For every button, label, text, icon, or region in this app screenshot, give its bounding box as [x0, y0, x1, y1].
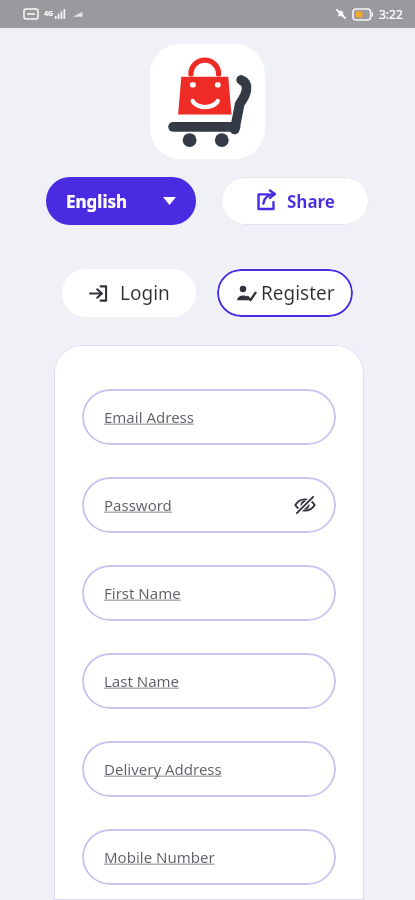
staticText: English: [66, 190, 128, 213]
button[interactable]: First Name: [82, 565, 336, 621]
button[interactable]: Register: [217, 269, 353, 317]
staticText: Share: [287, 190, 336, 213]
button[interactable]: English: [46, 177, 196, 225]
button[interactable]: Last Name: [82, 653, 336, 709]
button[interactable]: Mobile Number: [82, 829, 336, 885]
staticText: Password: [104, 495, 172, 515]
staticText: 4G: [44, 9, 54, 19]
staticText: Last Name: [104, 671, 180, 691]
staticText: Register: [261, 280, 335, 306]
staticText: 3:22: [379, 6, 403, 22]
button[interactable]: Show password: [292, 492, 318, 518]
button[interactable]: Email Adress: [82, 389, 336, 445]
button[interactable]: Password: [82, 477, 336, 533]
staticText: Mobile Number: [104, 847, 215, 867]
staticText: Login: [120, 280, 170, 306]
staticText: Delivery Address: [104, 759, 222, 779]
staticText: First Name: [104, 583, 181, 603]
staticText: Email Adress: [104, 407, 194, 427]
button[interactable]: Login: [62, 269, 196, 317]
button[interactable]: Share: [221, 177, 369, 225]
button[interactable]: Delivery Address: [82, 741, 336, 797]
